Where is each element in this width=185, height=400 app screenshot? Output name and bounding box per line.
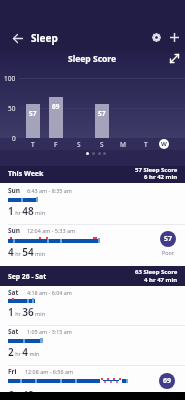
- staticText: Sep 26 - Sat: [8, 272, 47, 281]
- staticText: 12:08 am - 6:56 am: [25, 368, 73, 375]
- staticText: 100: [4, 74, 16, 83]
- staticText: 50: [8, 104, 16, 113]
- staticText: 12:04 am - 5:33 am: [27, 227, 75, 234]
- staticText: 57: [164, 234, 173, 244]
- staticText: Sun: [8, 186, 21, 195]
- staticText: Sleep Score: [68, 53, 117, 65]
- staticText: This Week: [8, 169, 44, 179]
- staticText: S: [77, 140, 81, 149]
- button[interactable]: [0, 224, 185, 266]
- button[interactable]: [0, 365, 185, 392]
- staticText: 4 hr 47 min: [144, 276, 178, 284]
- staticText: 1 hr 36 min: [8, 305, 46, 319]
- staticText: Sun: [8, 226, 21, 235]
- staticText: 57 Sleep Score: [135, 166, 178, 174]
- button[interactable]: [169, 32, 180, 43]
- button[interactable]: [0, 325, 185, 365]
- button[interactable]: [0, 286, 185, 325]
- staticText: 6:43 am - 8:35 am: [27, 187, 72, 194]
- staticText: 0: [12, 134, 16, 143]
- staticText: Fri: [8, 367, 17, 376]
- staticText: 2 hr 4 min: [8, 345, 40, 359]
- staticText: 63 Sleep Score: [135, 268, 178, 276]
- staticText: Poor: [162, 249, 175, 256]
- staticText: 4 hr 54 min: [8, 245, 46, 259]
- staticText: S: [100, 140, 104, 149]
- staticText: 1 hr 48 min: [8, 204, 46, 218]
- staticText: 6 hr 48 min: [8, 388, 46, 400]
- staticText: Sat: [8, 288, 19, 297]
- button[interactable]: 57: [160, 231, 176, 247]
- staticText: T: [31, 140, 35, 149]
- button[interactable]: W: [159, 139, 169, 149]
- button[interactable]: [151, 32, 162, 43]
- button[interactable]: 69: [159, 373, 175, 389]
- staticText: 57: [98, 109, 106, 118]
- staticText: M: [120, 140, 126, 149]
- staticText: W: [161, 140, 167, 148]
- button[interactable]: [168, 52, 181, 65]
- staticText: 1:05 am - 3:15 am: [27, 328, 72, 335]
- button[interactable]: [10, 30, 27, 47]
- staticText: T: [144, 140, 148, 149]
- staticText: F: [54, 140, 58, 149]
- staticText: 69: [52, 102, 60, 111]
- staticText: 6 hr 42 min: [144, 173, 178, 181]
- staticText: 4:18 am - 6:04 am: [27, 289, 72, 296]
- button[interactable]: [0, 183, 185, 224]
- staticText: Sat: [8, 327, 19, 336]
- staticText: 69: [163, 376, 172, 386]
- staticText: 57: [29, 109, 37, 118]
- staticText: Sleep: [31, 31, 58, 45]
